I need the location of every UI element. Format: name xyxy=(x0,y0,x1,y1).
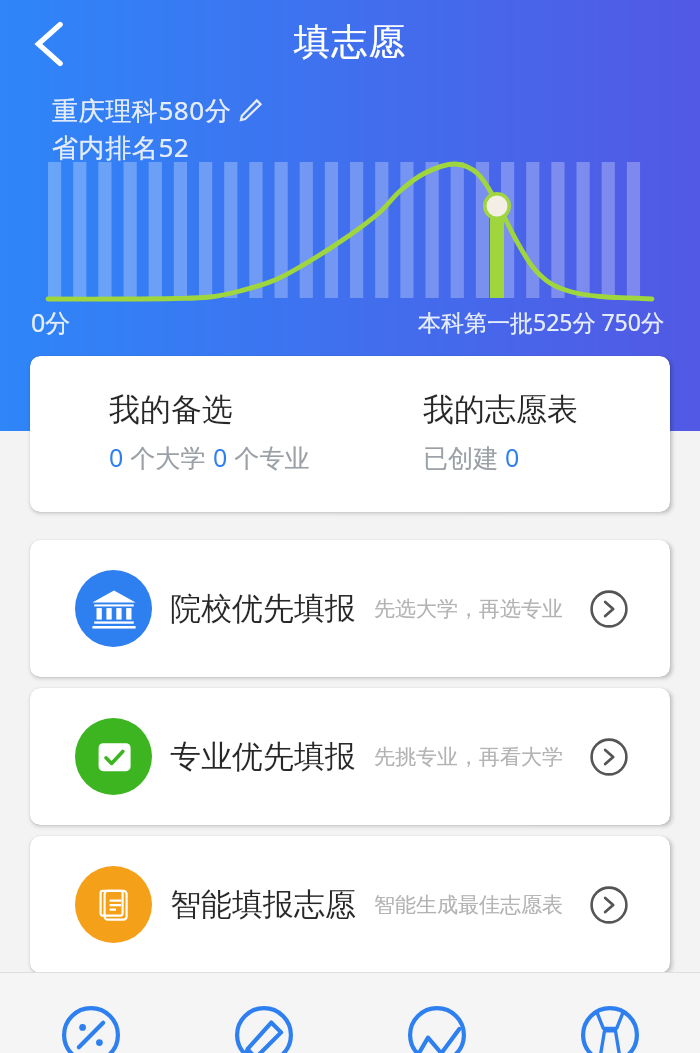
staticText: 0分 xyxy=(31,305,71,339)
staticText: 智能填报志愿 xyxy=(170,885,356,924)
button[interactable]: 我的志愿表 xyxy=(350,356,670,512)
button[interactable]: Trends xyxy=(350,972,523,1053)
button[interactable]: 智能填报志愿 xyxy=(30,836,670,973)
button[interactable]: Profile xyxy=(523,972,696,1053)
button[interactable]: Edit xyxy=(177,972,350,1053)
staticText: 0 xyxy=(213,440,228,474)
staticText: 已创建 xyxy=(423,440,505,474)
button[interactable]: Open 专业优先填报 xyxy=(590,738,628,776)
button[interactable]: Discount xyxy=(4,972,177,1053)
button[interactable]: 院校优先填报 xyxy=(30,540,670,677)
staticText: 专业优先填报 xyxy=(170,737,356,776)
staticText: 个大学 xyxy=(124,440,213,474)
staticText: 0 xyxy=(505,440,520,474)
button[interactable]: 我的备选 xyxy=(30,356,350,512)
staticText: 本科第一批525分 750分 xyxy=(418,306,664,337)
staticText: 智能生成最佳志愿表 xyxy=(374,892,563,918)
staticText: 我的志愿表 xyxy=(423,390,578,429)
staticText: 个专业 xyxy=(228,440,310,474)
staticText: 重庆理科580分 xyxy=(52,92,232,128)
button[interactable]: Open 院校优先填报 xyxy=(590,590,628,628)
staticText: 填志愿 xyxy=(0,19,700,64)
staticText: 先选大学，再选专业 xyxy=(374,596,563,622)
button[interactable]: Open 智能填报志愿 xyxy=(590,886,628,924)
button[interactable]: Back xyxy=(20,14,80,74)
staticText: 我的备选 xyxy=(109,390,233,429)
staticText: 0 xyxy=(109,440,124,474)
staticText: 先挑专业，再看大学 xyxy=(374,744,563,770)
staticText: 省内排名52 xyxy=(52,129,190,165)
staticText: 院校优先填报 xyxy=(170,589,356,628)
button[interactable]: 专业优先填报 xyxy=(30,688,670,825)
